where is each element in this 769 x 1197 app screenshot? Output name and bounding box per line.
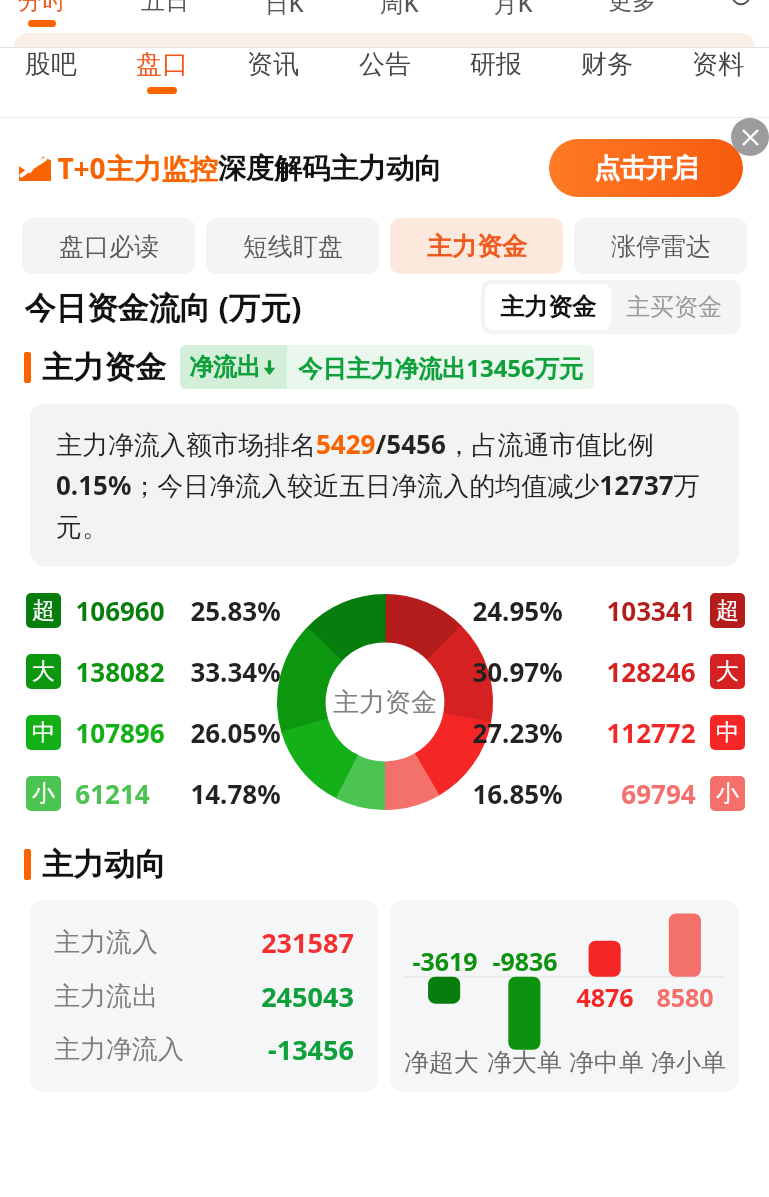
staticText: 深度解码主力动向 (218, 151, 442, 186)
staticText: -13456 (268, 1031, 354, 1068)
button[interactable]: 资讯 (244, 48, 302, 94)
staticText: 大 (32, 657, 55, 686)
staticText: 主力流出 (54, 980, 158, 1013)
staticText: 8580 (656, 980, 714, 1014)
staticText: 24.95% (472, 593, 563, 628)
staticText: 大 (716, 657, 739, 686)
staticText: 净流出 (189, 352, 261, 382)
staticText: 公告 (359, 48, 411, 81)
staticText: 盘口必读 (59, 231, 159, 262)
staticText: 涨停雷达 (611, 231, 711, 262)
button[interactable]: 财务 (578, 48, 636, 94)
staticText: 128246 (606, 654, 696, 689)
button[interactable]: 分时 (18, 0, 66, 41)
staticText: 27.23% (472, 715, 563, 750)
button[interactable]: 周K (379, 0, 419, 44)
staticText: 今日主力净流出13456万元 (298, 351, 583, 384)
staticText: 研报 (470, 48, 522, 81)
staticText: 盘口 (136, 48, 188, 81)
staticText: 小 (32, 779, 55, 808)
staticText: 财务 (581, 48, 633, 81)
button[interactable]: -3619 (390, 900, 739, 1092)
button[interactable]: 涨停雷达 (574, 218, 747, 274)
staticText: 106960 (75, 593, 165, 628)
staticText: 25.83% (190, 593, 281, 628)
staticText: 小 (716, 779, 739, 808)
staticText: 4876 (576, 980, 634, 1014)
button[interactable]: 公告 (356, 48, 414, 94)
staticText: 净小单 (651, 1047, 726, 1078)
staticText: 中 (716, 718, 739, 747)
staticText: 主力动向 (42, 845, 166, 884)
staticText: 周K (379, 0, 419, 19)
button[interactable]: Close (731, 118, 769, 156)
staticText: 中 (32, 718, 55, 747)
button[interactable]: 短线盯盘 (206, 218, 379, 274)
staticText: 股吧 (25, 48, 77, 81)
staticText: 今日资金流向 (万元) (24, 286, 302, 328)
button[interactable]: 点击开启 (549, 139, 743, 197)
staticText: 112772 (606, 715, 696, 750)
staticText: 138082 (75, 654, 165, 689)
button[interactable]: 月K (493, 0, 533, 44)
staticText: 30.97% (472, 654, 563, 689)
button[interactable]: 更多 (608, 0, 656, 41)
staticText: 更多 (608, 0, 656, 16)
staticText: -3619 (412, 944, 478, 978)
button[interactable]: 日K (264, 0, 304, 44)
staticText: 14.78% (190, 776, 281, 811)
button[interactable]: Settings (731, 0, 751, 6)
staticText: 103341 (606, 593, 696, 628)
staticText: 主力流入 (54, 926, 158, 959)
staticText: 超 (716, 596, 739, 625)
staticText: 月K (493, 0, 533, 19)
staticText: 主力资金 (333, 686, 437, 719)
staticText: 主力净流入 (54, 1033, 184, 1066)
staticText: 净超大 (404, 1047, 479, 1078)
staticText: 245043 (261, 978, 354, 1015)
staticText: 日K (264, 0, 304, 19)
staticText: 61214 (75, 776, 150, 811)
button[interactable]: 资料 (689, 48, 747, 94)
staticText: 五日 (141, 0, 189, 16)
button[interactable]: 盘口 (133, 48, 191, 94)
staticText: 分时 (18, 0, 66, 16)
button[interactable]: 股吧 (22, 48, 80, 94)
staticText: 主力资金 (500, 292, 596, 322)
staticText: 净中单 (569, 1047, 644, 1078)
staticText: 69794 (621, 776, 696, 811)
button[interactable]: 主力资金 (390, 218, 563, 274)
button[interactable]: 主力流入 (30, 900, 378, 1092)
staticText: T+0主力监控 (57, 149, 218, 187)
button[interactable]: 主买资金 (611, 284, 737, 330)
button[interactable]: 盘口必读 (22, 218, 195, 274)
staticText: 主力资金 (42, 348, 166, 387)
staticText: 净大单 (487, 1047, 562, 1078)
staticText: 主买资金 (626, 292, 722, 322)
staticText: -9836 (492, 944, 558, 978)
staticText: 107896 (75, 715, 165, 750)
staticText: 16.85% (472, 776, 563, 811)
staticText: 超 (32, 596, 55, 625)
staticText: 资料 (692, 48, 744, 81)
staticText: 26.05% (190, 715, 281, 750)
button[interactable]: 五日 (141, 0, 189, 41)
staticText: 231587 (261, 924, 354, 961)
staticText: 主力资金 (427, 231, 527, 262)
button[interactable]: 主力资金 (485, 284, 611, 330)
button[interactable]: 研报 (467, 48, 525, 94)
staticText: 点击开启 (594, 152, 698, 185)
staticText: 33.34% (190, 654, 281, 689)
staticText: 资讯 (247, 48, 299, 81)
staticText: 主力净流入额市场排名5429/5456，占流通市值比例0.15%；今日净流入较近… (56, 426, 717, 544)
staticText: 短线盯盘 (243, 231, 343, 262)
